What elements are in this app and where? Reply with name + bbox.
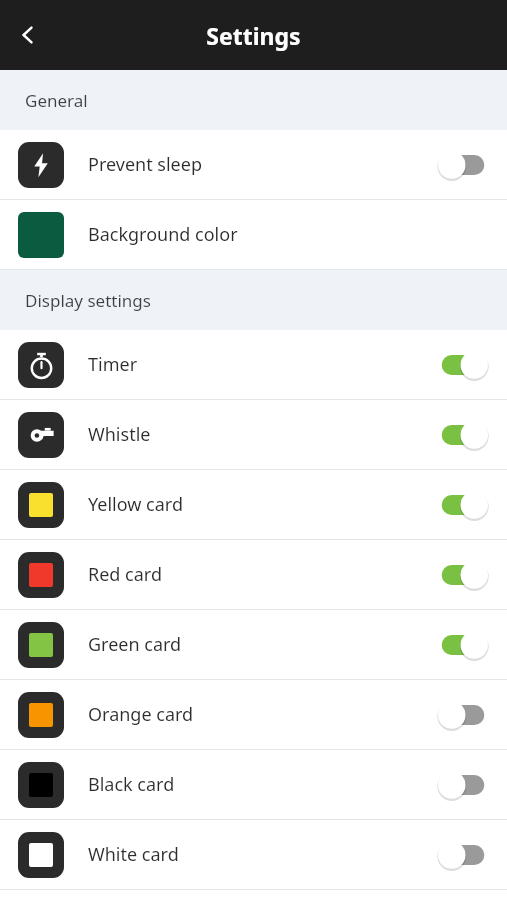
- button[interactable]: Yellow card: [0, 470, 507, 539]
- button[interactable]: Whistle: [0, 400, 507, 469]
- other: Off: [437, 769, 489, 801]
- staticText: General: [25, 89, 88, 112]
- other: On: [437, 349, 489, 381]
- button[interactable]: Background color: [0, 200, 507, 269]
- other: Off: [437, 839, 489, 871]
- staticText: Timer: [88, 352, 437, 377]
- staticText: Settings: [206, 20, 301, 51]
- staticText: Background color: [88, 222, 489, 247]
- other: Off: [437, 149, 489, 181]
- other: On: [437, 489, 489, 521]
- other: On: [437, 629, 489, 661]
- staticText: White card: [88, 842, 437, 867]
- other: Off: [437, 699, 489, 731]
- staticText: Yellow card: [88, 492, 437, 517]
- button[interactable]: Black card: [0, 750, 507, 819]
- staticText: Red card: [88, 562, 437, 587]
- other: On: [437, 559, 489, 591]
- button[interactable]: Timer: [0, 330, 507, 399]
- staticText: Display settings: [25, 289, 151, 312]
- button[interactable]: White card: [0, 820, 507, 889]
- button[interactable]: Orange card: [0, 680, 507, 749]
- staticText: Orange card: [88, 702, 437, 727]
- staticText: Prevent sleep: [88, 152, 437, 177]
- button[interactable]: Prevent sleep: [0, 130, 507, 199]
- button[interactable]: Red card: [0, 540, 507, 609]
- staticText: Whistle: [88, 422, 437, 447]
- button[interactable]: Back: [0, 7, 56, 63]
- staticText: Green card: [88, 632, 437, 657]
- other: On: [437, 419, 489, 451]
- button[interactable]: Green card: [0, 610, 507, 679]
- staticText: Black card: [88, 772, 437, 797]
